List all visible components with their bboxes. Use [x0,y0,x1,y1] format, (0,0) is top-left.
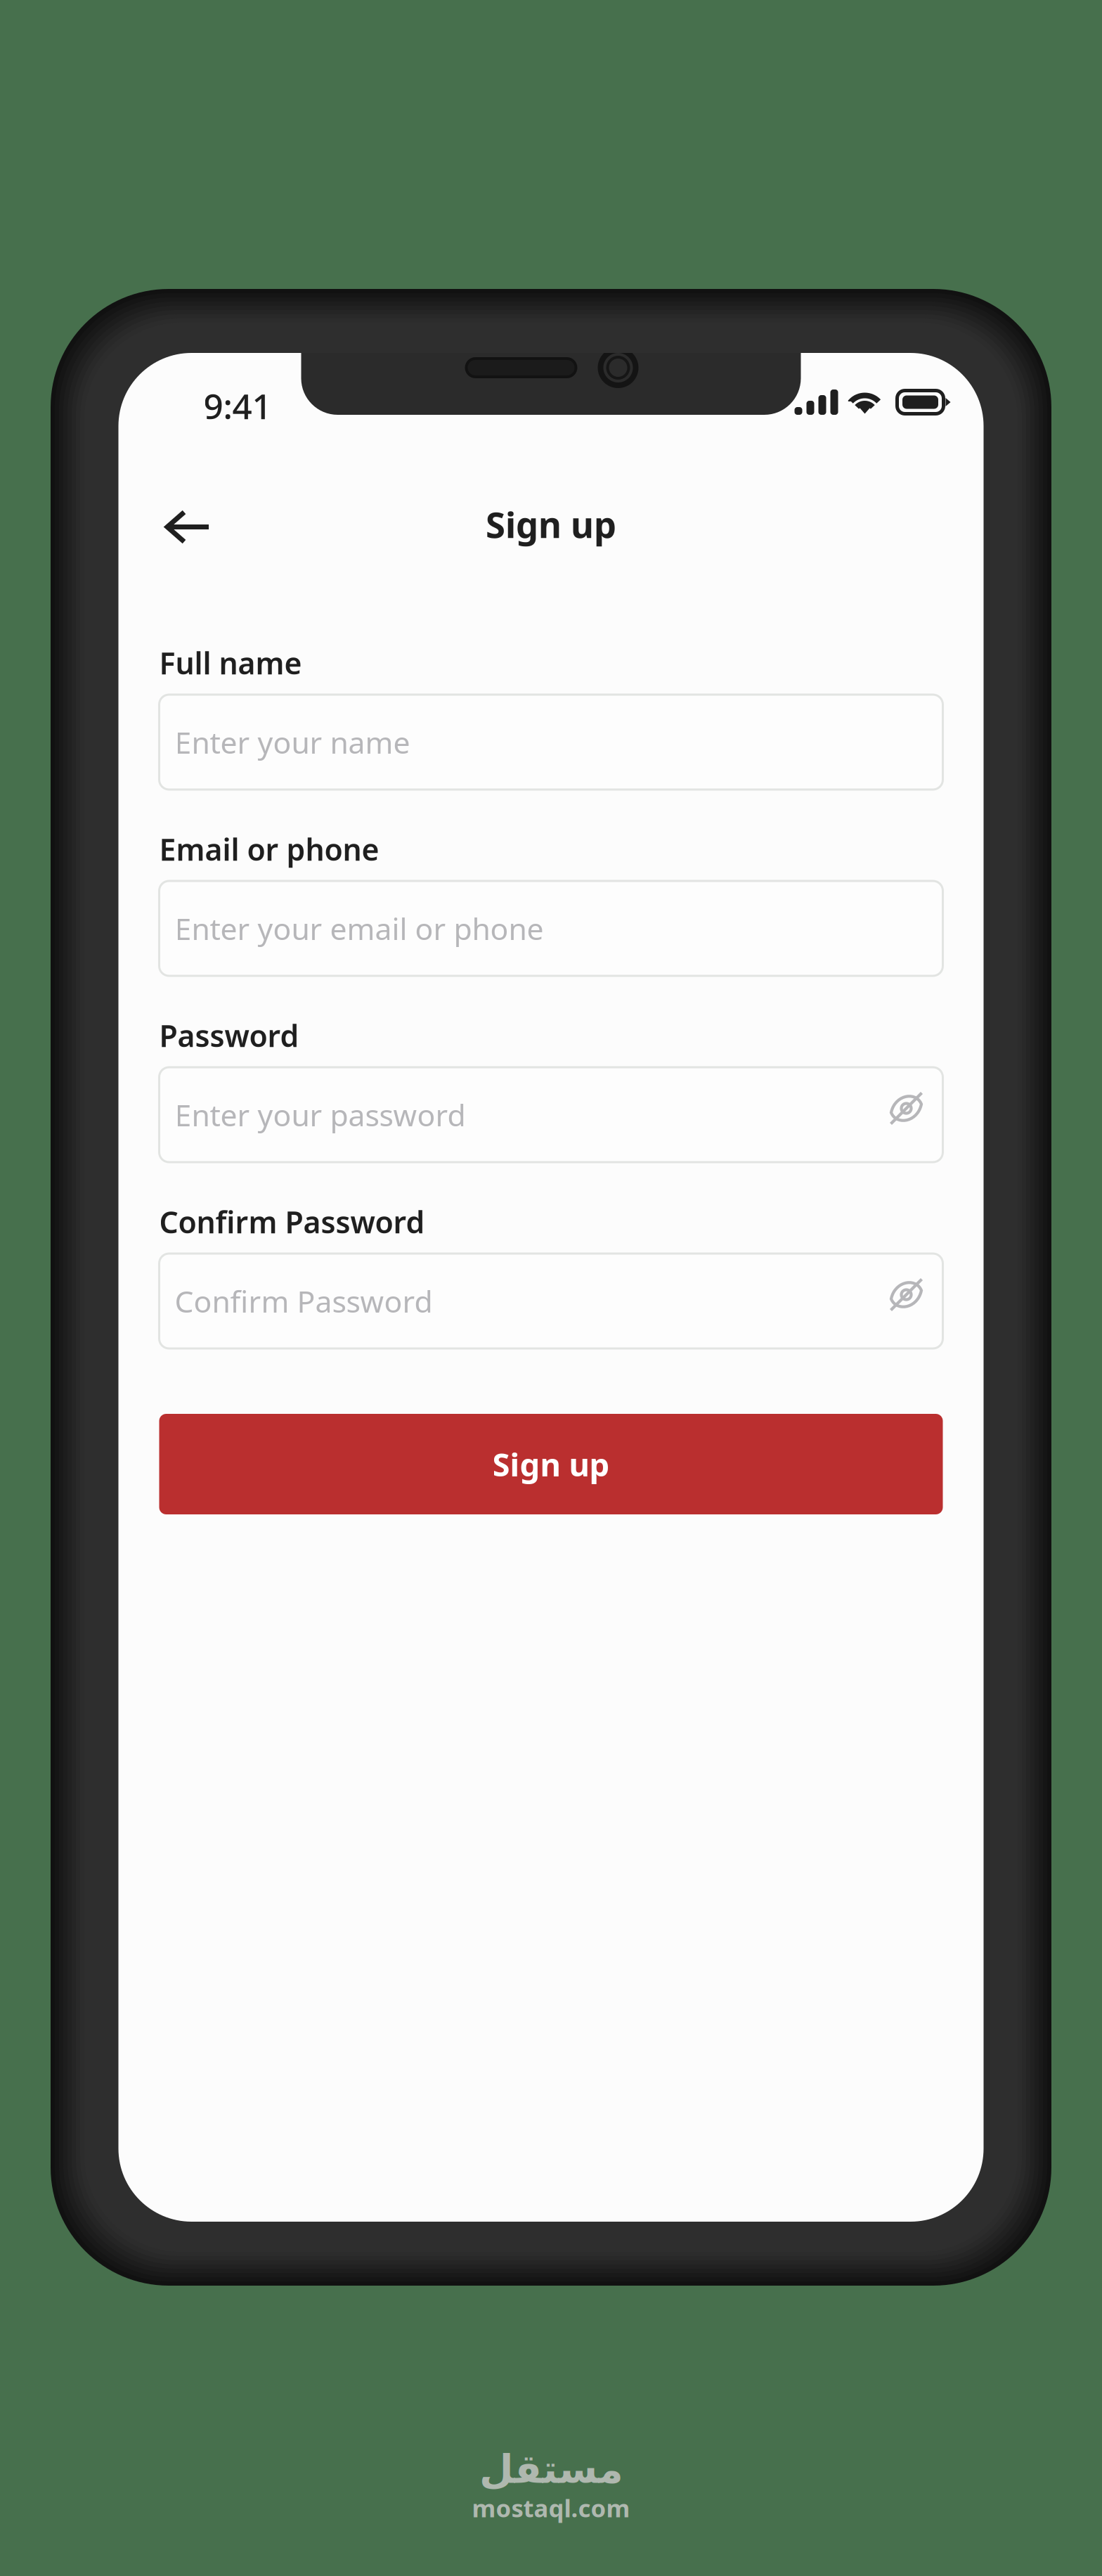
staticText: 9:41 [203,383,272,429]
staticText: Enter your name [175,722,410,762]
staticText: mostaql.com [472,2492,630,2524]
button[interactable]: Full name [159,695,943,790]
staticText: مستقل [479,2447,623,2492]
staticText: Enter your email or phone [175,908,544,948]
button[interactable]: Email or phone [159,881,943,976]
button[interactable]: Confirm Password [159,1254,943,1348]
staticText: Email or phone [159,829,379,869]
button[interactable]: Back [159,495,232,568]
staticText: Confirm Password [175,1281,433,1321]
button[interactable]: Sign up [159,1414,943,1514]
button[interactable]: Show password [880,1082,933,1135]
button[interactable]: Show password [880,1268,933,1321]
staticText: Sign up [492,1443,610,1485]
staticText: Sign up [486,501,616,548]
staticText: Password [159,1015,299,1055]
staticText: Full name [159,643,302,683]
button[interactable]: Password [159,1067,943,1162]
staticText: Confirm Password [159,1202,425,1242]
staticText: Enter your password [175,1095,466,1135]
